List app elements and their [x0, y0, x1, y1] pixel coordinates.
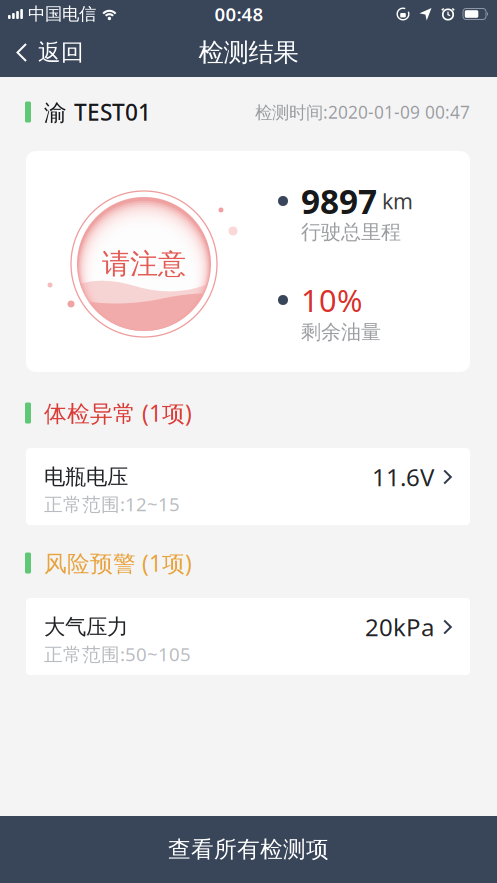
staticText: 10%: [301, 280, 362, 320]
staticText: 正常范围:50~105: [44, 642, 191, 666]
staticText: km: [382, 187, 413, 215]
staticText: 检测时间:2020-01-09 00:47: [255, 100, 470, 123]
staticText: 检测结果: [198, 37, 298, 68]
staticText: 风险预警 (1项): [44, 548, 192, 578]
staticText: 20kPa: [365, 611, 434, 643]
button[interactable]: 查看所有检测项: [0, 816, 497, 883]
staticText: 中国电信: [28, 3, 96, 25]
staticText: 渝 TEST01: [44, 97, 151, 127]
staticText: 行驶总里程: [301, 220, 401, 244]
staticText: 9897: [301, 179, 377, 223]
staticText: 大气压力: [44, 614, 128, 640]
button[interactable]: 电瓶电压: [0, 448, 497, 525]
staticText: 查看所有检测项: [168, 836, 329, 863]
staticText: 体检异常 (1项): [44, 398, 192, 428]
staticText: 请注意: [102, 247, 186, 281]
staticText: 00:48: [214, 2, 263, 26]
staticText: 电瓶电压: [44, 464, 128, 490]
staticText: 正常范围:12~15: [44, 492, 180, 516]
staticText: 返回: [38, 39, 84, 66]
staticText: 剩余油量: [301, 320, 381, 344]
staticText: 11.6V: [372, 461, 434, 493]
button[interactable]: 返回: [0, 28, 84, 77]
button[interactable]: 大气压力: [0, 598, 497, 675]
